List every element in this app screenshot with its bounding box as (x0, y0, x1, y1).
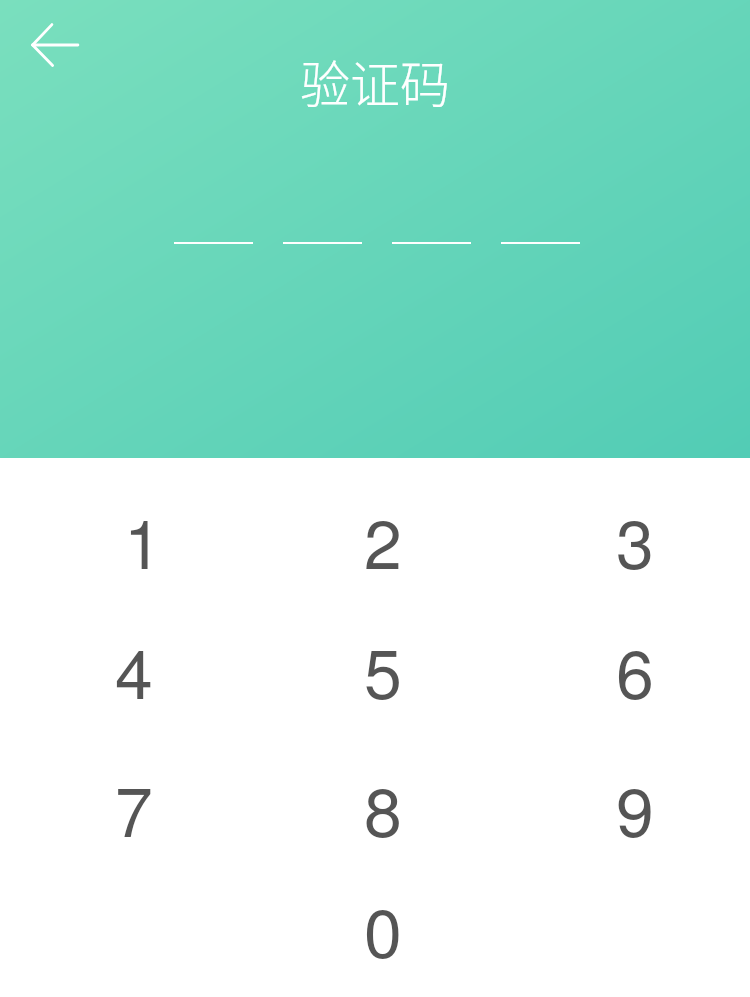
button[interactable]: 2 (258, 472, 508, 606)
button[interactable]: Back (12, 12, 78, 78)
button[interactable]: 4 (9, 602, 259, 736)
button[interactable]: 5 (258, 602, 508, 736)
staticText: 6 (616, 621, 654, 718)
staticText: 4 (115, 621, 153, 718)
staticText: 9 (616, 759, 654, 856)
button[interactable]: 3 (510, 472, 750, 606)
staticText: 1 (124, 491, 162, 588)
staticText: 7 (115, 759, 153, 856)
staticText: 0 (364, 880, 402, 977)
button[interactable]: 6 (510, 602, 750, 736)
staticText: 3 (616, 491, 654, 588)
button[interactable]: 9 (510, 740, 750, 874)
button[interactable]: 8 (258, 740, 508, 874)
staticText: 2 (364, 491, 402, 588)
button[interactable]: Verification code input (174, 213, 580, 273)
button[interactable]: 7 (9, 740, 259, 874)
staticText: 验证码 (300, 45, 450, 117)
staticText: 8 (364, 759, 402, 856)
button[interactable]: 0 (258, 861, 508, 995)
button[interactable]: 1 (9, 472, 259, 606)
staticText: 5 (364, 621, 402, 718)
